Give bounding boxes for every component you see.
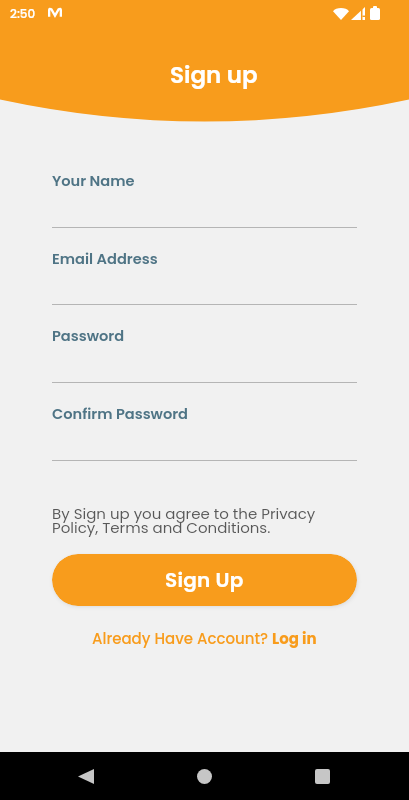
staticText: Password (52, 326, 125, 346)
staticText: Confirm Password (52, 404, 189, 424)
staticText: 2:50 (10, 5, 36, 22)
button[interactable]: Already Have Account? Log in (52, 628, 357, 649)
staticText: Sign Up (165, 566, 244, 594)
staticText: By Sign up you agree to the Privacy Poli… (52, 503, 357, 539)
button[interactable]: Home (180, 752, 229, 800)
staticText: Sign up (170, 59, 258, 91)
staticText: Your Name (52, 171, 135, 191)
button[interactable]: Sign Up (52, 554, 357, 606)
staticText: Already Have Account? Log in (92, 628, 317, 649)
staticText: Email Address (52, 249, 158, 269)
button[interactable]: Recent apps (298, 752, 347, 800)
button[interactable]: Back (61, 752, 110, 800)
